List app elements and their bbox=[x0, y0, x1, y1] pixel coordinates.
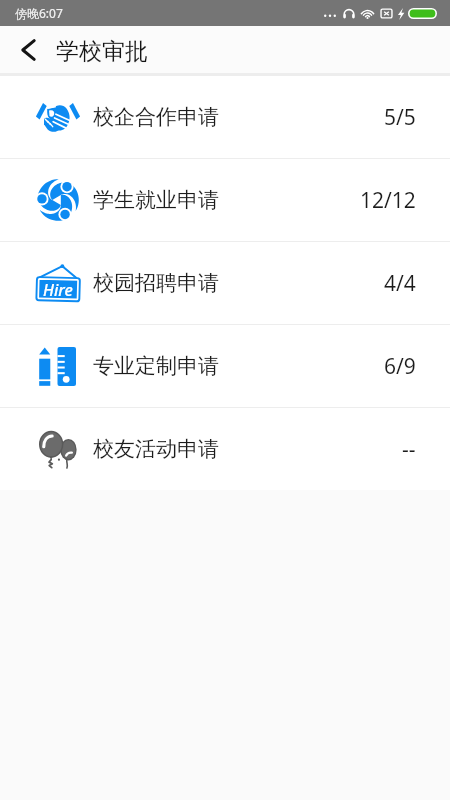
staticText: 校企合作申请 bbox=[93, 104, 219, 130]
staticText: 校园招聘申请 bbox=[93, 270, 219, 296]
staticText: 专业定制申请 bbox=[93, 353, 219, 379]
staticText: 学生就业申请 bbox=[93, 187, 219, 213]
button[interactable]: Back bbox=[0, 26, 57, 73]
button[interactable]: 校企合作申请 bbox=[0, 76, 450, 158]
staticText: 校友活动申请 bbox=[93, 436, 219, 462]
button[interactable]: 专业定制申请 bbox=[0, 325, 450, 407]
staticText: 傍晚6:07 bbox=[15, 5, 63, 21]
staticText: -- bbox=[402, 435, 416, 464]
staticText: 学校审批 bbox=[56, 37, 148, 66]
staticText: 5/5 bbox=[384, 103, 416, 132]
button[interactable]: Hire bbox=[0, 242, 450, 324]
staticText: Hire bbox=[43, 279, 73, 301]
button[interactable]: 校友活动申请 bbox=[0, 408, 450, 490]
staticText: 6/9 bbox=[384, 352, 416, 381]
button[interactable]: 学生就业申请 bbox=[0, 159, 450, 241]
staticText: 4/4 bbox=[384, 269, 416, 298]
staticText: 12/12 bbox=[360, 186, 416, 215]
